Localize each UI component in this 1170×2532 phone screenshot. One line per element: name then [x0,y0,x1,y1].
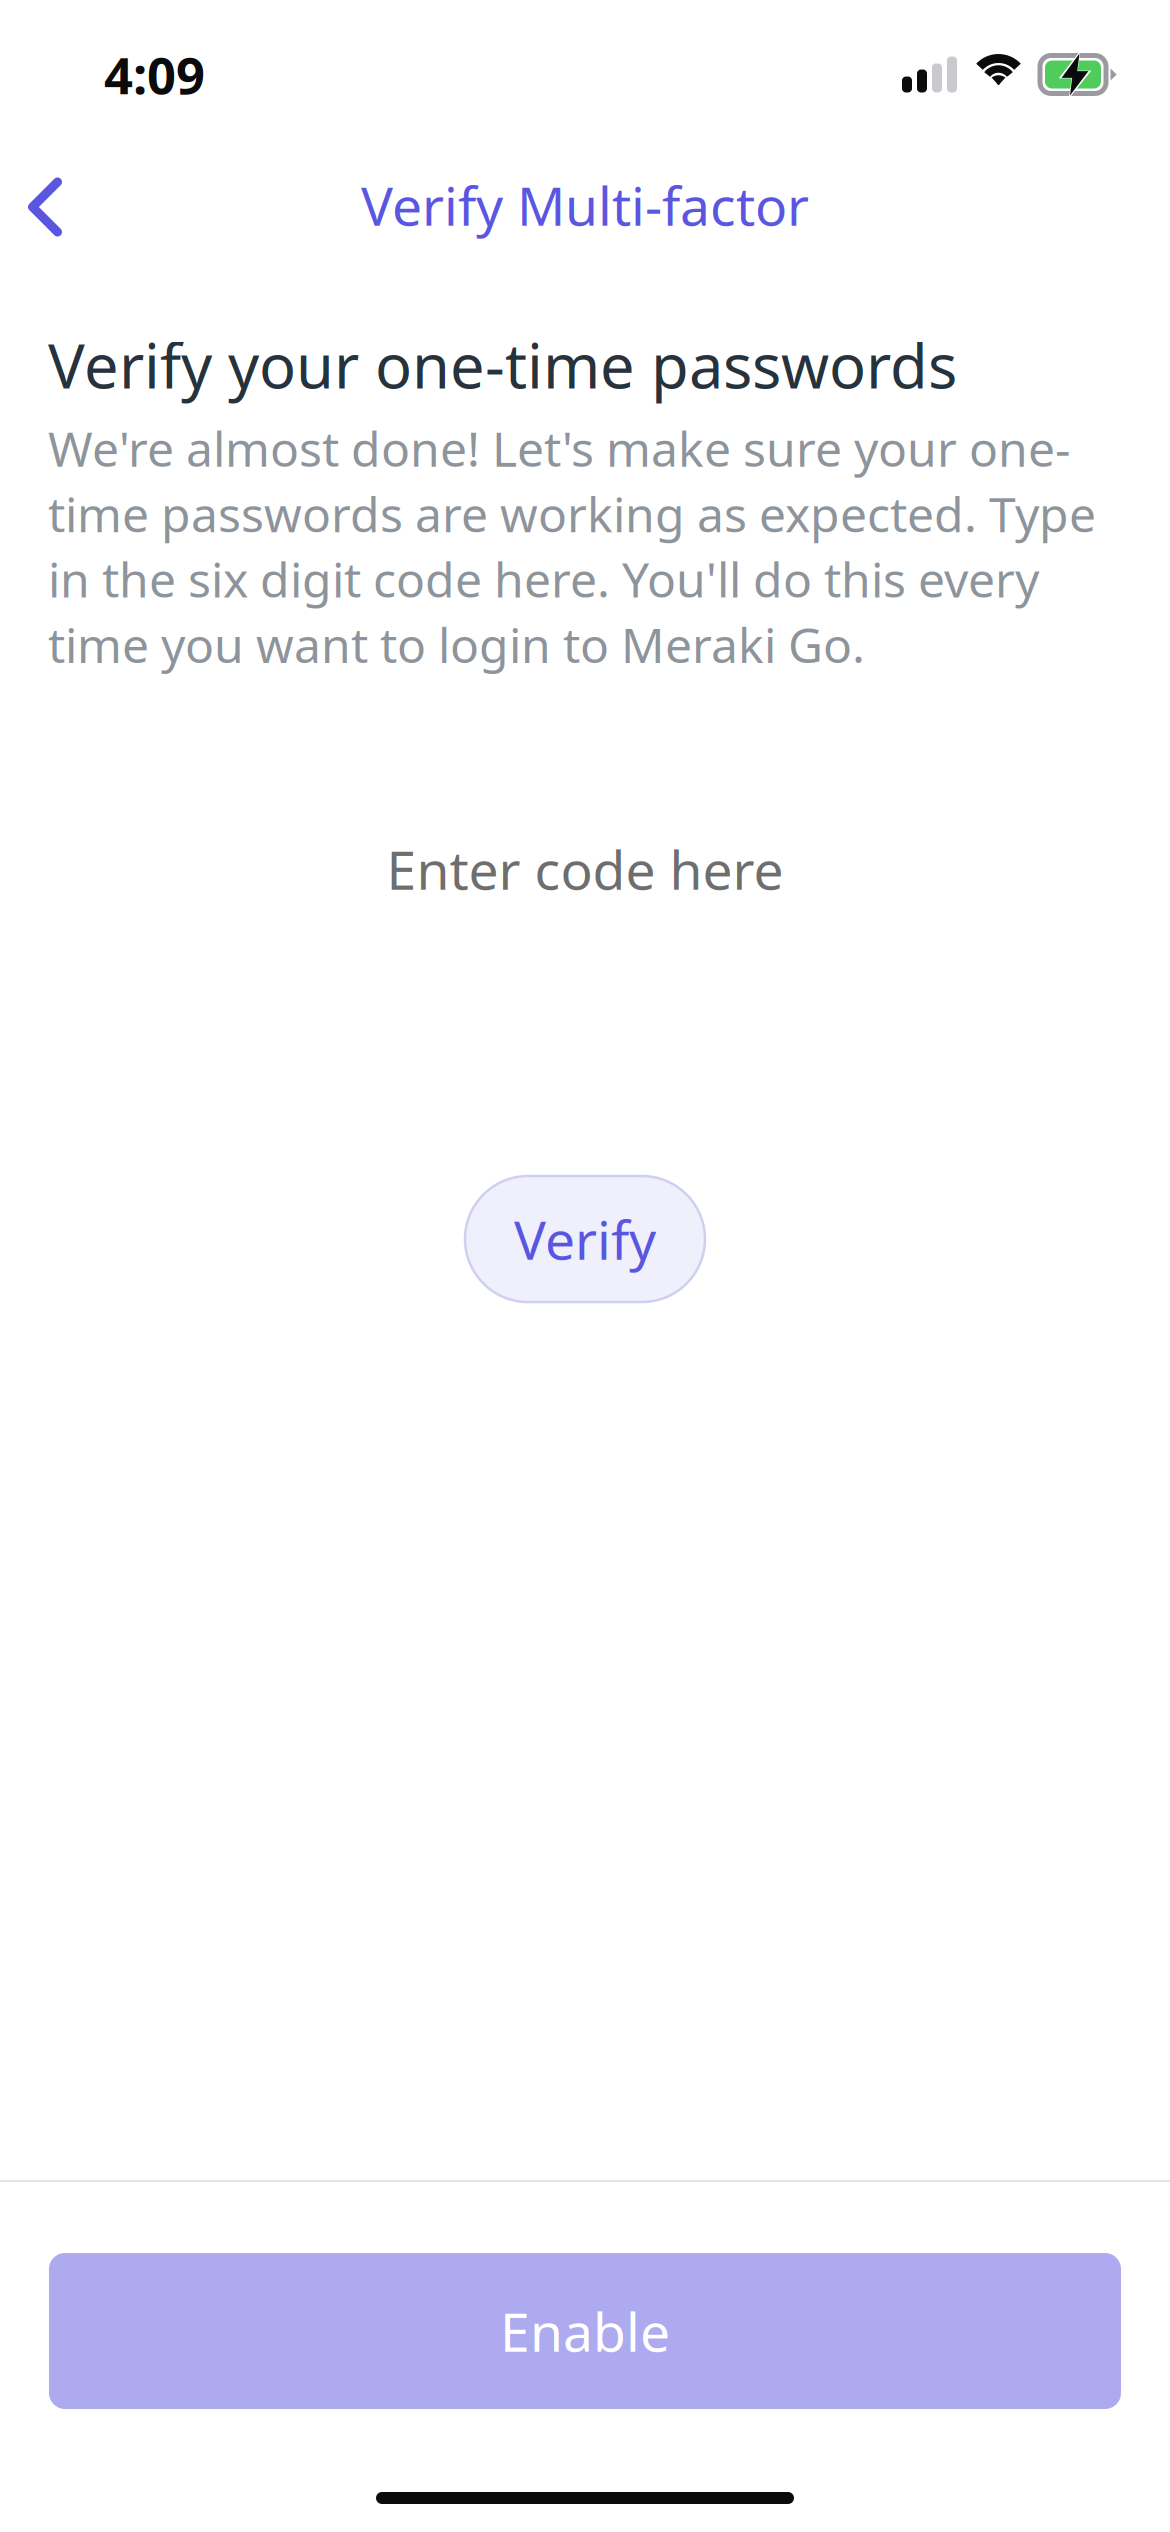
button[interactable]: Back [0,150,100,248]
staticText: Enable [500,2295,670,2367]
button[interactable]: Enter code here [0,821,1170,917]
staticText: Verify your one-time passwords [48,323,957,406]
button[interactable]: Enable [49,2253,1121,2409]
staticText: Enter code here [386,833,783,905]
staticText: We're almost done! Let's make sure your … [48,415,1096,677]
staticText: 4:09 [104,40,205,109]
button[interactable]: Verify [465,1176,705,1302]
staticText: Verify Multi-factor [361,169,809,241]
staticText: Verify [514,1203,656,1275]
